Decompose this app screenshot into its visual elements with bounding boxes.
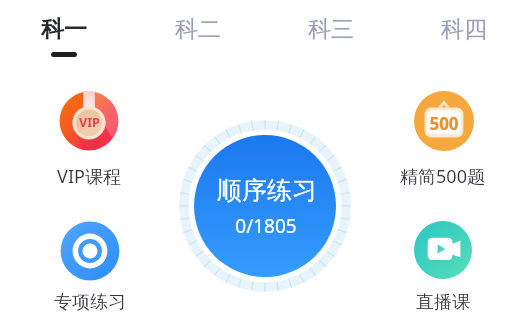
- button[interactable]: 科三: [264, 0, 397, 52]
- staticText: VIP: [79, 114, 100, 131]
- button[interactable]: 科一: [0, 0, 132, 57]
- staticText: 精简500题: [400, 164, 485, 189]
- other: 直播课: [398, 215, 488, 300]
- button[interactable]: 直播课: [378, 215, 508, 316]
- staticText: 科一: [41, 15, 87, 44]
- button[interactable]: 科二: [132, 0, 264, 52]
- staticText: 专项练习: [54, 291, 126, 314]
- button[interactable]: 科四: [397, 0, 530, 52]
- staticText: 直播课: [416, 291, 470, 314]
- staticText: 顺序练习: [217, 175, 317, 206]
- button[interactable]: 顺序练习: [177, 118, 353, 294]
- button[interactable]: 精简500题: [377, 86, 507, 189]
- staticText: 500: [429, 112, 459, 135]
- button[interactable]: 专项练习: [25, 216, 155, 316]
- other: VIP课程: [44, 86, 134, 171]
- staticText: 科三: [308, 15, 354, 44]
- button[interactable]: VIP课程: [24, 86, 154, 189]
- staticText: VIP课程: [57, 164, 121, 189]
- staticText: 科四: [441, 15, 487, 44]
- staticText: 科二: [175, 15, 221, 44]
- other: 专项练习: [45, 216, 135, 301]
- other: 精简500题: [399, 86, 489, 171]
- staticText: 0/1805: [235, 213, 297, 239]
